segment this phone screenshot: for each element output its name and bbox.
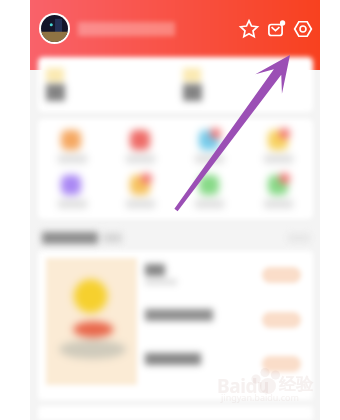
button[interactable]: Favorites bbox=[238, 18, 260, 40]
staticText: jingyan.baidu.com bbox=[221, 391, 299, 403]
button[interactable]: Messages bbox=[265, 18, 287, 40]
button[interactable] bbox=[175, 57, 313, 112]
button[interactable] bbox=[175, 173, 244, 219]
button[interactable]: Settings bbox=[292, 18, 314, 40]
button[interactable] bbox=[106, 173, 175, 219]
button[interactable]: Action bbox=[262, 312, 301, 328]
button[interactable]: Action bbox=[145, 304, 303, 348]
button[interactable]: Action bbox=[145, 259, 303, 303]
button[interactable]: Profile avatar bbox=[41, 15, 68, 42]
staticText: 经验 bbox=[279, 374, 313, 395]
button[interactable] bbox=[106, 128, 175, 173]
button[interactable]: Action bbox=[145, 348, 303, 392]
button[interactable] bbox=[38, 173, 106, 219]
button[interactable]: Action bbox=[262, 356, 301, 372]
button[interactable] bbox=[175, 128, 244, 173]
button[interactable] bbox=[38, 57, 175, 112]
button[interactable] bbox=[38, 128, 106, 173]
button[interactable] bbox=[244, 128, 313, 173]
button[interactable]: Course cover bbox=[46, 258, 137, 385]
button[interactable] bbox=[244, 173, 313, 219]
button[interactable]: Action bbox=[262, 267, 301, 283]
staticText: Baidu bbox=[217, 373, 270, 399]
